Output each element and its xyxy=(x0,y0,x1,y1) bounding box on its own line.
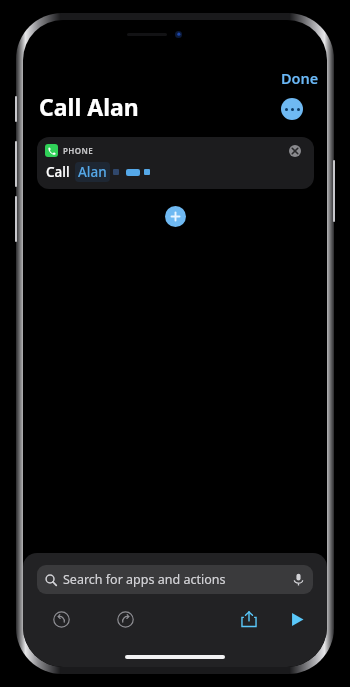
staticText: Call xyxy=(46,163,70,181)
staticText: PHONE xyxy=(63,145,94,156)
button[interactable]: Run shortcut xyxy=(280,602,314,636)
button[interactable]: Undo xyxy=(44,602,78,636)
staticText: Alan xyxy=(78,163,107,181)
button[interactable]: Done xyxy=(271,64,327,92)
staticText: Call Alan xyxy=(39,91,139,122)
button[interactable]: Add action xyxy=(165,206,186,227)
button[interactable]: More options xyxy=(281,98,303,120)
button[interactable]: PHONE xyxy=(37,137,314,189)
staticText: Done xyxy=(281,68,319,88)
staticText: Search for apps and actions xyxy=(63,571,226,588)
button[interactable]: Search for apps and actions xyxy=(37,565,313,594)
button[interactable]: Share xyxy=(232,602,266,636)
button[interactable]: Remove action xyxy=(289,145,301,157)
button[interactable]: Redo xyxy=(108,602,142,636)
